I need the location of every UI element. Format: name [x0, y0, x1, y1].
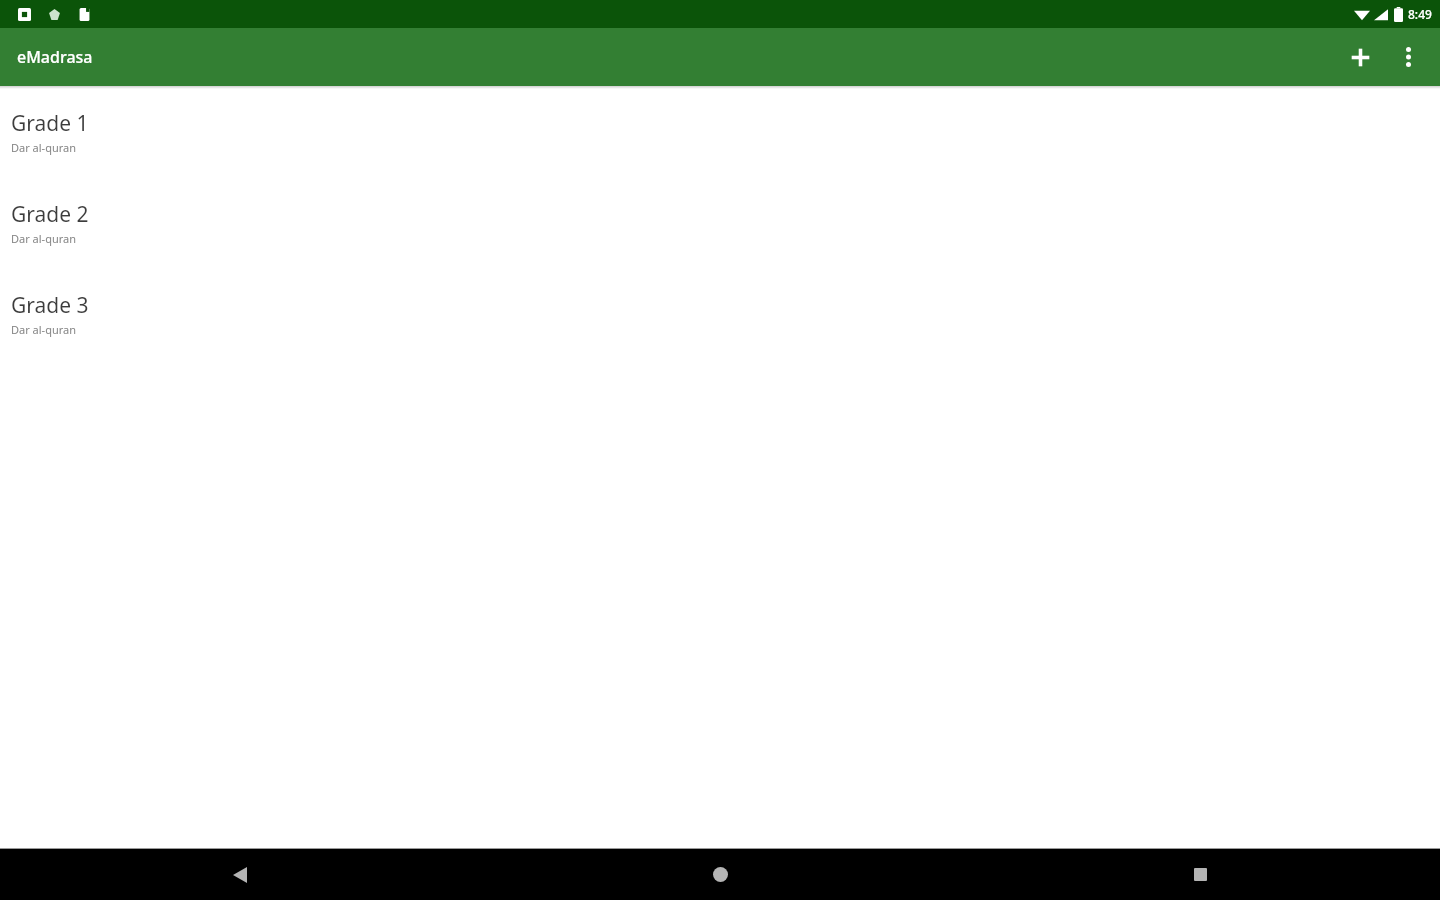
staticText: Grade 1 [11, 109, 89, 138]
staticText: Grade 2 [11, 200, 89, 229]
staticText: Dar al-quran [11, 322, 77, 337]
button[interactable]: Grade 2 [0, 198, 1440, 289]
button[interactable]: Home [480, 849, 960, 900]
staticText: Dar al-quran [11, 140, 77, 155]
button[interactable]: Recent apps [960, 849, 1440, 900]
staticText: Grade 3 [11, 291, 89, 320]
staticText: 8:49 [1408, 6, 1432, 22]
button[interactable]: More options [1384, 33, 1432, 81]
button[interactable]: Grade 1 [0, 107, 1440, 198]
button[interactable]: Back [0, 849, 480, 900]
button[interactable]: Add [1336, 33, 1384, 81]
staticText: eMadrasa [17, 46, 93, 68]
staticText: Dar al-quran [11, 231, 77, 246]
button[interactable]: Grade 3 [0, 289, 1440, 380]
